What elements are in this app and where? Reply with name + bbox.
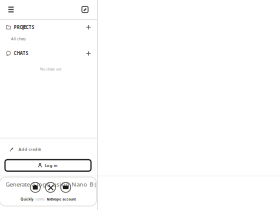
button[interactable]: Menu <box>3 0 19 19</box>
staticText: CHATS <box>14 50 28 56</box>
button[interactable]: All chats <box>0 33 97 44</box>
staticText: Quickly <box>20 197 33 201</box>
staticText: Anthropic account <box>47 197 76 201</box>
staticText: All chats <box>11 36 26 41</box>
button[interactable]: CHATS <box>0 47 82 59</box>
button[interactable]: New chat <box>77 0 93 19</box>
button[interactable]: Log in <box>5 160 91 171</box>
button[interactable]: YouTube <box>61 182 71 192</box>
button[interactable]: Add credits <box>0 139 97 160</box>
button[interactable]: PROJECTS <box>0 21 82 33</box>
staticText: Terms <box>35 197 45 201</box>
staticText: Generate a logo using Nano B| <box>5 180 96 188</box>
button[interactable]: New projects <box>82 21 94 33</box>
staticText: Log in <box>45 163 58 168</box>
staticText: Add credits <box>18 146 41 152</box>
button[interactable]: New chats <box>82 47 94 59</box>
staticText: PROJECTS <box>14 24 34 30</box>
button[interactable]: Instagram <box>30 182 40 192</box>
button[interactable]: X <box>45 182 55 192</box>
staticText: No chats yet <box>40 66 61 72</box>
